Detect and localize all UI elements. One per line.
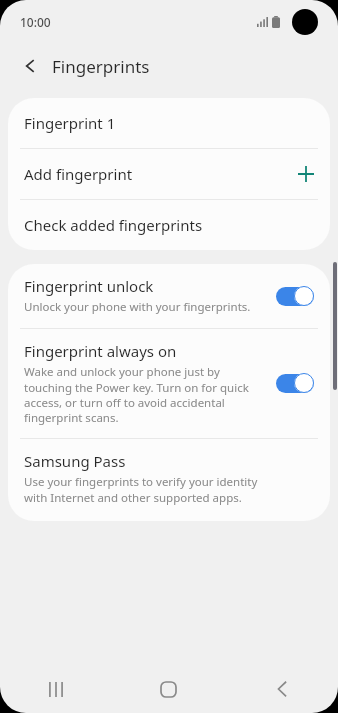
staticText: Fingerprint unlock [24, 276, 154, 296]
staticText: Wake and unlock your phone just by touch… [24, 364, 266, 425]
staticText: 10:00 [20, 14, 51, 30]
button[interactable]: Fingerprint unlock [8, 264, 330, 328]
button[interactable]: Home [112, 665, 225, 713]
staticText: Fingerprint always on [24, 341, 177, 361]
staticText: Check added fingerprints [24, 215, 314, 235]
button[interactable]: Toggle [276, 285, 316, 307]
button[interactable]: Fingerprint 1 [8, 98, 330, 148]
button[interactable]: Back [225, 665, 338, 713]
staticText: Add fingerprint [24, 164, 298, 184]
button[interactable]: Add fingerprint [8, 149, 330, 199]
staticText: Fingerprint 1 [24, 113, 314, 133]
button[interactable]: Samsung Pass [8, 439, 330, 521]
button[interactable]: Back [12, 48, 48, 84]
button[interactable]: Fingerprint always on [8, 329, 330, 438]
staticText: Samsung Pass [24, 451, 126, 471]
button[interactable]: Check added fingerprints [8, 200, 330, 250]
staticText: Fingerprints [52, 55, 150, 78]
button[interactable]: Recent apps [0, 665, 112, 713]
staticText: Use your fingerprints to verify your ide… [24, 474, 268, 505]
button[interactable]: Toggle [276, 372, 316, 394]
staticText: Unlock your phone with your fingerprints… [24, 299, 251, 315]
